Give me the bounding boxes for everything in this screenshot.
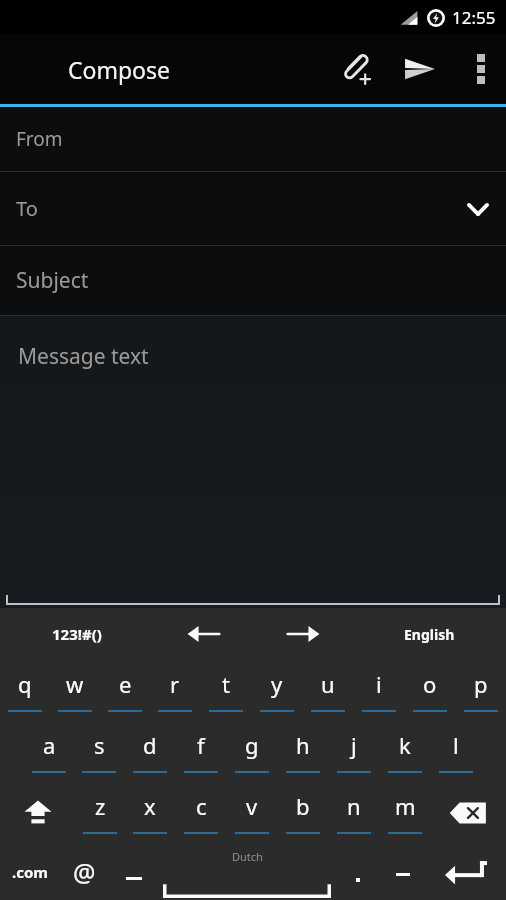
button[interactable]: u xyxy=(302,660,353,721)
button[interactable]: t xyxy=(200,660,251,721)
button[interactable]: @ xyxy=(59,843,109,900)
button[interactable]: o xyxy=(404,660,455,721)
button[interactable]: l xyxy=(430,721,481,782)
staticText: From xyxy=(16,126,63,152)
button[interactable]: Move right xyxy=(253,608,352,660)
staticText: e xyxy=(119,669,132,699)
button[interactable]: h xyxy=(277,721,328,782)
staticText: n xyxy=(347,791,361,821)
staticText: Subject xyxy=(16,266,89,295)
staticText: r xyxy=(170,669,180,699)
staticText: q xyxy=(18,669,32,699)
button[interactable]: r xyxy=(150,660,200,721)
staticText: English xyxy=(404,625,455,644)
button[interactable]: f xyxy=(175,721,226,782)
button[interactable]: Backspace xyxy=(430,782,506,843)
button[interactable]: .com xyxy=(0,843,59,900)
button[interactable]: e xyxy=(100,660,150,721)
button[interactable]: s xyxy=(74,721,124,782)
staticText: t xyxy=(222,669,230,699)
button[interactable]: m xyxy=(379,782,430,843)
button[interactable]: z xyxy=(75,782,125,843)
staticText: v xyxy=(246,791,258,821)
button[interactable] xyxy=(380,843,425,900)
staticText: l xyxy=(453,730,459,760)
staticText: x xyxy=(144,791,156,821)
staticText: u xyxy=(321,669,335,699)
button[interactable]: More options xyxy=(456,34,506,104)
button[interactable]: d xyxy=(124,721,175,782)
staticText: s xyxy=(94,730,105,760)
button[interactable]: Enter xyxy=(425,843,506,900)
button[interactable]: k xyxy=(379,721,430,782)
button[interactable]: Shift xyxy=(0,782,75,843)
button[interactable]: v xyxy=(226,782,277,843)
button[interactable]: From xyxy=(0,107,506,171)
button[interactable] xyxy=(335,843,380,900)
staticText: d xyxy=(143,730,157,760)
staticText: m xyxy=(395,791,416,821)
button[interactable] xyxy=(109,843,159,900)
staticText: z xyxy=(95,791,106,821)
staticText: w xyxy=(66,669,84,699)
staticText: To xyxy=(16,195,38,222)
staticText: a xyxy=(43,730,56,760)
button[interactable]: Move left xyxy=(154,608,253,660)
staticText: j xyxy=(351,730,357,760)
button[interactable]: 123!#() xyxy=(0,608,154,660)
staticText: b xyxy=(296,791,310,821)
button[interactable]: j xyxy=(328,721,379,782)
staticText: k xyxy=(399,730,411,760)
staticText: i xyxy=(376,669,382,699)
button[interactable]: Attach file xyxy=(326,34,384,104)
button[interactable]: English xyxy=(352,608,506,660)
staticText: f xyxy=(197,730,205,760)
staticText: .com xyxy=(12,862,48,882)
button[interactable]: n xyxy=(328,782,379,843)
staticText: h xyxy=(296,730,310,760)
button[interactable]: y xyxy=(251,660,302,721)
staticText: y xyxy=(271,669,283,699)
button[interactable]: b xyxy=(277,782,328,843)
staticText: g xyxy=(245,730,259,760)
staticText: Compose xyxy=(68,54,171,85)
button[interactable]: Send xyxy=(384,34,456,104)
staticText: 12:55 xyxy=(452,6,496,29)
staticText: o xyxy=(423,669,437,699)
staticText: 123!#() xyxy=(52,624,102,644)
button[interactable]: c xyxy=(175,782,226,843)
button[interactable]: p xyxy=(455,660,506,721)
button[interactable]: q xyxy=(0,660,50,721)
button[interactable]: w xyxy=(50,660,100,721)
button[interactable]: g xyxy=(226,721,277,782)
button[interactable]: Expand recipients xyxy=(450,181,506,237)
button[interactable]: x xyxy=(125,782,175,843)
staticText: Message text xyxy=(18,342,149,371)
button[interactable]: To xyxy=(0,172,506,245)
staticText: p xyxy=(474,669,488,699)
button[interactable]: i xyxy=(353,660,404,721)
button[interactable]: Subject xyxy=(0,246,506,315)
button[interactable]: a xyxy=(24,721,74,782)
staticText: c xyxy=(196,791,207,821)
staticText: Dutch xyxy=(232,849,263,864)
button[interactable]: Message text xyxy=(0,316,506,608)
staticText: @ xyxy=(73,855,96,889)
button[interactable]: Space xyxy=(159,843,335,900)
